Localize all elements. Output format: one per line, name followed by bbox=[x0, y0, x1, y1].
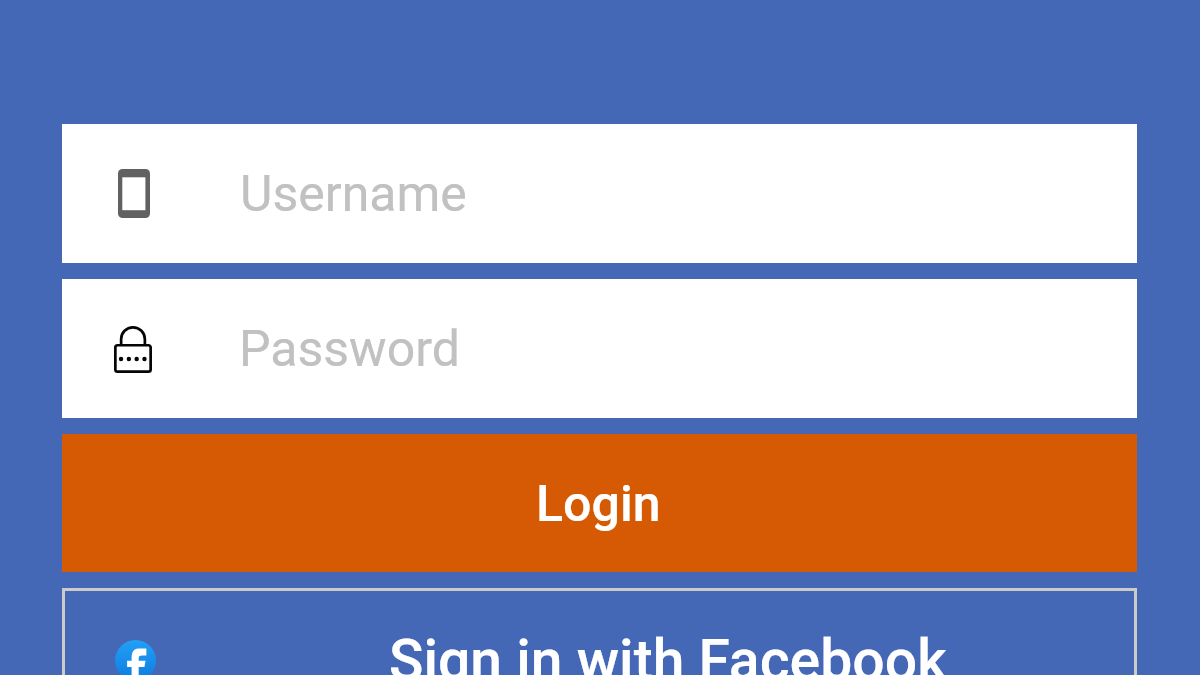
button[interactable]: Facebook bbox=[62, 588, 1137, 675]
staticText: Sign in with Facebook bbox=[389, 627, 947, 675]
button[interactable]: Username bbox=[62, 124, 1137, 263]
staticText: Username bbox=[240, 165, 467, 224]
staticText: Login bbox=[536, 475, 661, 534]
button[interactable]: Login bbox=[62, 434, 1137, 572]
other: Facebook bbox=[115, 640, 156, 675]
button[interactable]: Password bbox=[62, 279, 1137, 418]
staticText: Password bbox=[239, 320, 460, 379]
